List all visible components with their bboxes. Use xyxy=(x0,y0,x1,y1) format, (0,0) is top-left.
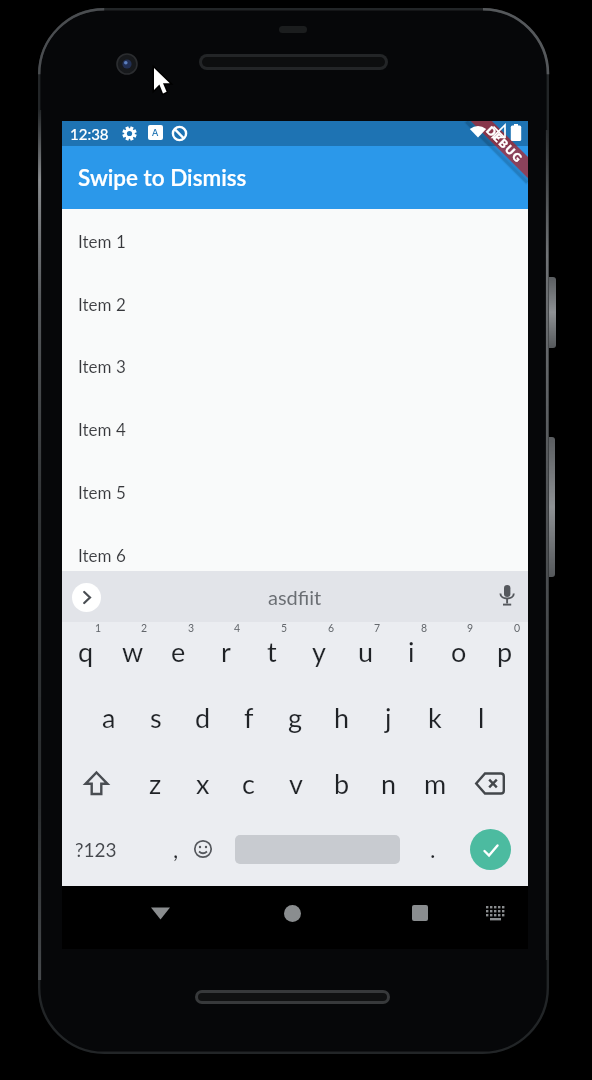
button[interactable] xyxy=(150,906,171,921)
staticText: t xyxy=(267,635,277,667)
staticText: k xyxy=(428,701,442,733)
button[interactable]: Item 1 xyxy=(62,209,528,272)
button[interactable]: x xyxy=(179,750,226,816)
button[interactable]: Item 2 xyxy=(62,272,528,335)
button[interactable] xyxy=(485,905,506,922)
staticText: z xyxy=(149,767,162,799)
button[interactable]: j xyxy=(365,684,412,750)
staticText: e xyxy=(171,635,186,667)
staticText: , xyxy=(173,835,179,863)
button[interactable]: o xyxy=(435,618,482,684)
button[interactable]: , xyxy=(159,816,193,882)
staticText: 9 xyxy=(467,622,474,635)
staticText: A xyxy=(152,127,159,138)
staticText: y xyxy=(312,635,326,667)
staticText: Item 5 xyxy=(78,482,126,502)
staticText: 1 xyxy=(95,622,102,635)
staticText: w xyxy=(122,635,144,667)
button[interactable]: g xyxy=(272,684,319,750)
staticText: asdfiit xyxy=(268,585,322,609)
staticText: ?123 xyxy=(75,838,117,861)
button[interactable]: m xyxy=(412,750,459,816)
staticText: 6 xyxy=(328,622,335,635)
button[interactable]: v xyxy=(272,750,319,816)
button[interactable]: e xyxy=(155,618,202,684)
button[interactable]: f xyxy=(225,684,272,750)
staticText: n xyxy=(381,767,397,799)
button[interactable]: ?123 xyxy=(62,816,130,882)
button[interactable]: Item 3 xyxy=(62,334,528,397)
staticText: l xyxy=(478,701,485,733)
button[interactable]: s xyxy=(132,684,179,750)
staticText: i xyxy=(408,635,415,667)
button[interactable]: r xyxy=(202,618,249,684)
button[interactable]: l xyxy=(458,684,505,750)
staticText: p xyxy=(497,635,513,667)
button[interactable]: Item 6 xyxy=(62,523,528,586)
staticText: 7 xyxy=(374,622,381,635)
button[interactable]: d xyxy=(179,684,226,750)
staticText: Item 2 xyxy=(78,294,126,314)
staticText: a xyxy=(102,701,116,733)
button[interactable]: w xyxy=(109,618,156,684)
staticText: 4 xyxy=(234,622,241,635)
staticText: b xyxy=(334,767,350,799)
staticText: 5 xyxy=(281,622,288,635)
staticText: o xyxy=(451,635,467,667)
button[interactable]: y xyxy=(295,618,342,684)
staticText: Swipe to Dismiss xyxy=(78,164,247,191)
staticText: j xyxy=(385,701,392,733)
staticText: x xyxy=(196,767,210,799)
staticText: 12:38 xyxy=(70,125,109,143)
staticText: f xyxy=(244,701,254,733)
staticText: Item 4 xyxy=(78,419,126,439)
staticText: g xyxy=(288,701,303,733)
staticText: Item 3 xyxy=(78,356,126,376)
staticText: 8 xyxy=(421,622,428,635)
button[interactable] xyxy=(470,829,511,870)
button[interactable]: Item 5 xyxy=(62,460,528,523)
staticText: 0 xyxy=(514,622,521,635)
button[interactable]: u xyxy=(342,618,389,684)
button[interactable] xyxy=(495,583,519,611)
staticText: h xyxy=(334,701,350,733)
staticText: . xyxy=(430,835,436,863)
button[interactable] xyxy=(455,750,525,816)
staticText: Item 1 xyxy=(78,231,126,251)
staticText: 3 xyxy=(188,622,195,635)
staticText: c xyxy=(242,767,255,799)
button[interactable]: p xyxy=(481,618,528,684)
staticText: q xyxy=(78,635,94,667)
button[interactable]: k xyxy=(411,684,458,750)
button[interactable]: z xyxy=(132,750,179,816)
button[interactable] xyxy=(192,838,214,860)
staticText: 2 xyxy=(141,622,148,635)
button[interactable]: n xyxy=(365,750,412,816)
button[interactable]: . xyxy=(417,816,449,882)
staticText: u xyxy=(358,635,374,667)
button[interactable] xyxy=(412,905,428,921)
staticText: v xyxy=(289,767,303,799)
button[interactable]: Item 4 xyxy=(62,397,528,460)
staticText: s xyxy=(150,701,162,733)
button[interactable]: b xyxy=(318,750,365,816)
button[interactable]: q xyxy=(62,618,109,684)
button[interactable]: c xyxy=(225,750,272,816)
button[interactable] xyxy=(62,750,130,816)
staticText: DEBUG xyxy=(483,123,525,166)
staticText: Item 6 xyxy=(78,545,126,565)
staticText: r xyxy=(221,635,231,667)
button[interactable]: h xyxy=(318,684,365,750)
button[interactable] xyxy=(72,583,101,612)
staticText: d xyxy=(195,701,211,733)
button[interactable]: a xyxy=(85,684,132,750)
staticText: m xyxy=(424,767,447,799)
button[interactable]: i xyxy=(388,618,435,684)
button[interactable] xyxy=(284,905,301,922)
button[interactable]: t xyxy=(248,618,295,684)
